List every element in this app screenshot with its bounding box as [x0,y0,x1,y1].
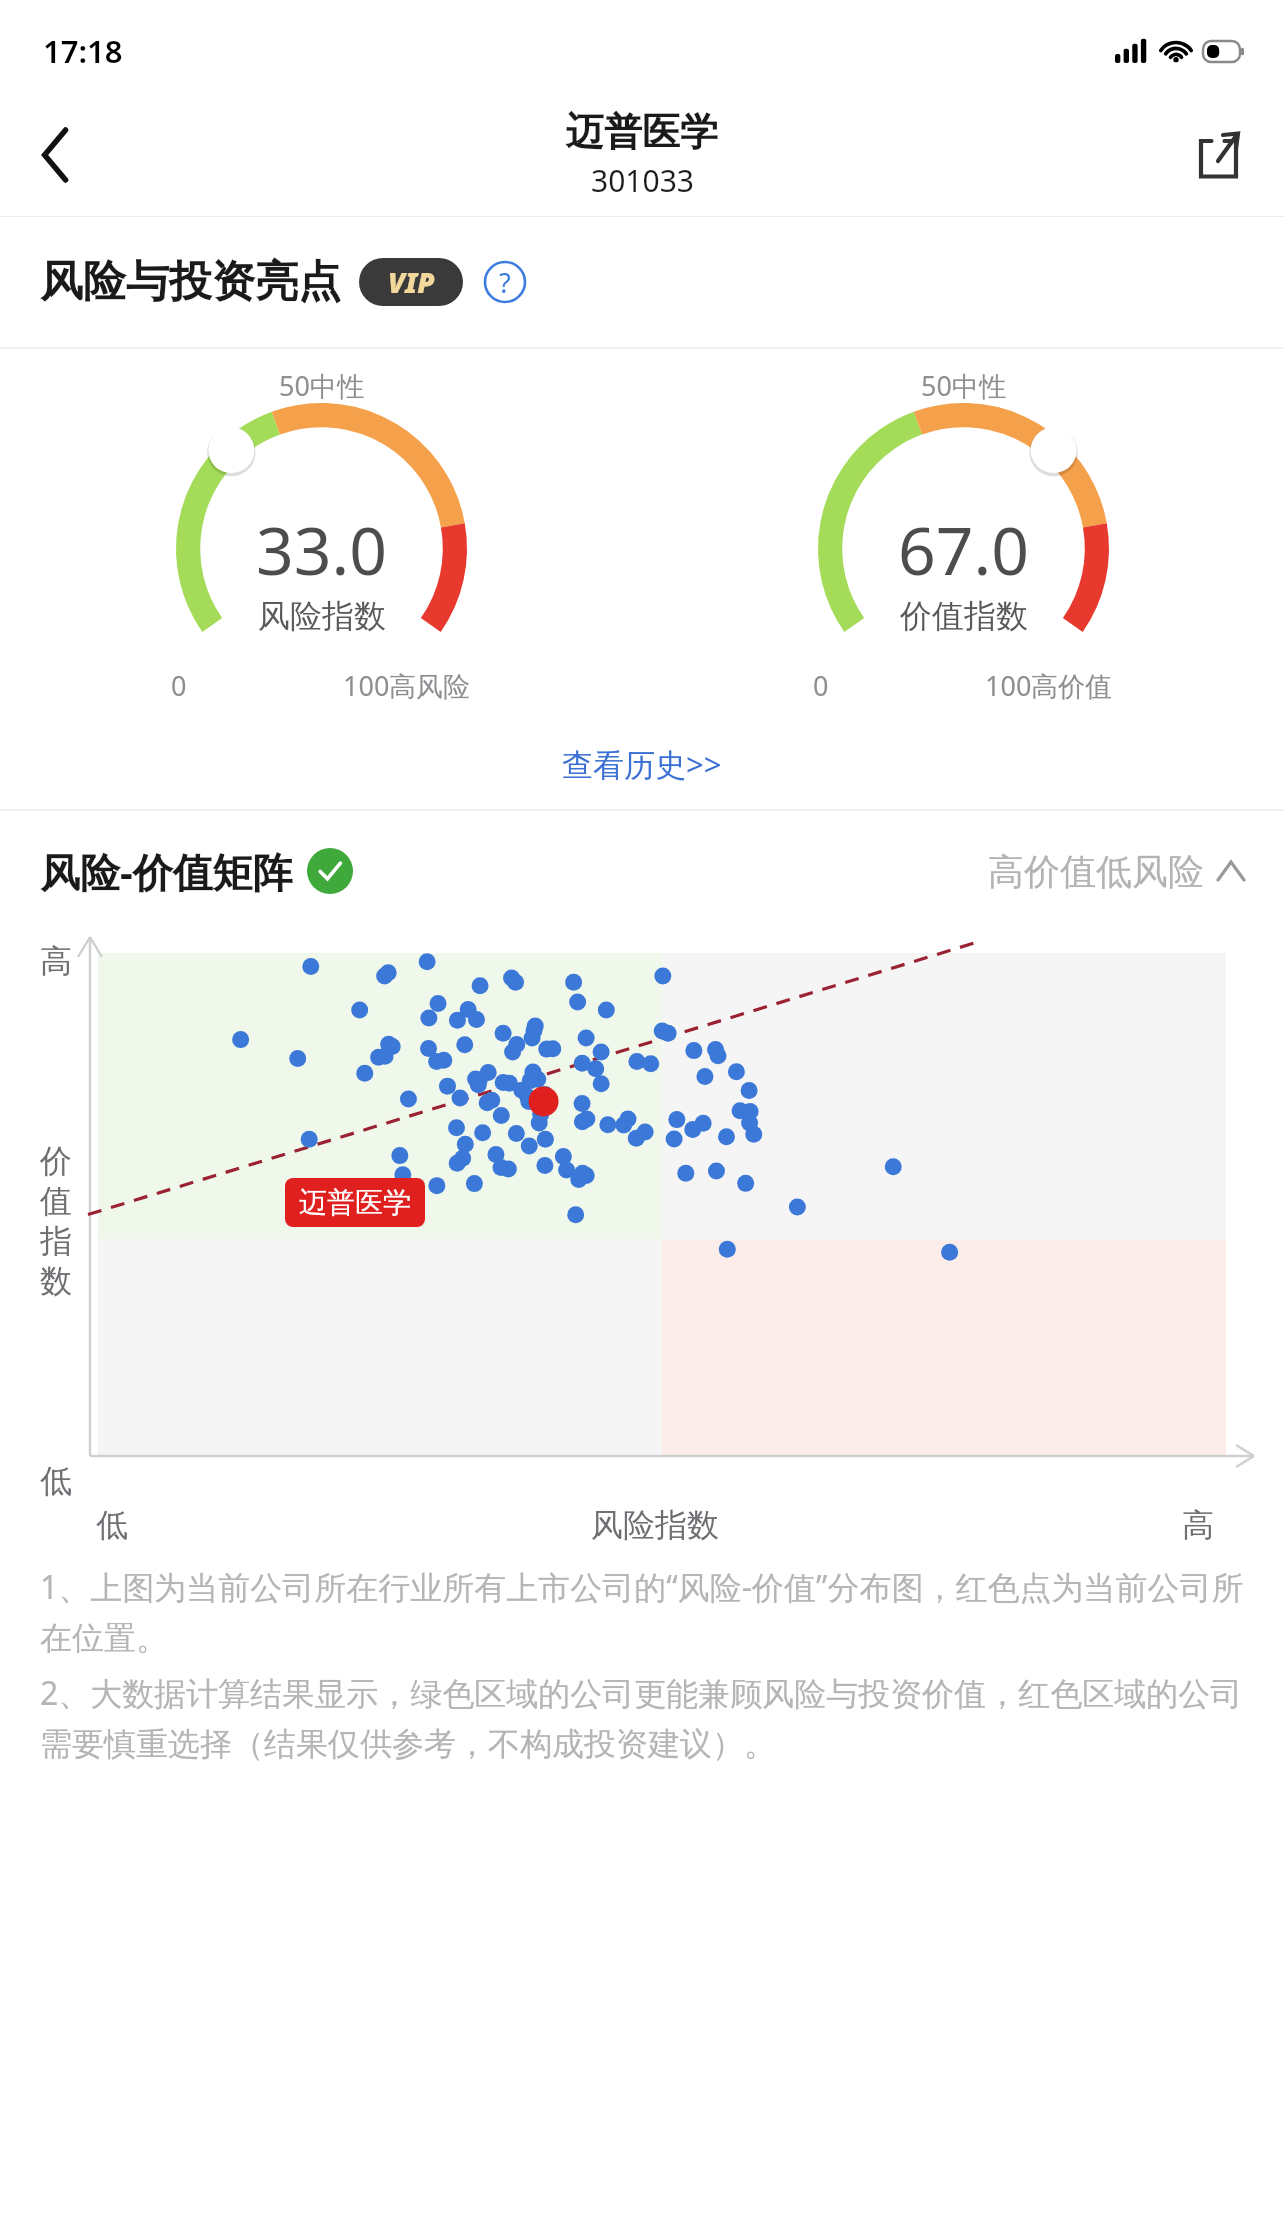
button[interactable]: Back [18,117,94,193]
staticText: 50中性 [921,367,1006,404]
staticText: 价 [40,1141,72,1181]
staticText: 风险-价值矩阵 [40,844,293,899]
staticText: 查看历史>> [562,743,722,785]
staticText: 100高价值 [985,667,1113,704]
staticText: 迈普医学 [566,108,718,156]
staticText: 风险与投资亮点 [40,255,341,309]
staticText: 2、大数据计算结果显示，绿色区域的公司更能兼顾风险与投资价值，红色区域的公司需要… [40,1671,1248,1765]
button[interactable]: Help [479,256,531,308]
button[interactable]: 查看历史>> [0,719,1284,809]
staticText: 风险指数 [258,596,386,636]
staticText: 低 [96,1505,128,1545]
staticText: 数 [40,1261,72,1301]
staticText: 67.0 [898,504,1029,594]
staticText: ? [499,264,511,301]
staticText: 价值指数 [900,596,1028,636]
button[interactable]: VIP [359,258,463,306]
button[interactable]: 风险-价值矩阵 [40,811,1244,931]
button[interactable]: Share [1180,117,1256,193]
staticText: 100高风险 [343,667,471,704]
staticText: 高价值低风险 [988,849,1204,894]
staticText: 301033 [591,160,694,201]
button[interactable]: 迈普医学 [299,1185,411,1220]
staticText: 17:18 [43,30,123,72]
staticText: 0 [171,667,187,704]
staticText: 高 [1182,1505,1214,1545]
staticText: 指 [40,1221,72,1261]
staticText: VIP [388,263,435,301]
staticText: 迈普医学 [299,1185,411,1220]
staticText: 50中性 [279,367,364,404]
staticText: 值 [40,1181,72,1221]
staticText: 风险指数 [591,1505,719,1545]
staticText: 1、上图为当前公司所在行业所有上市公司的“风险-价值”分布图，红色点为当前公司所… [40,1565,1248,1659]
staticText: 低 [40,1461,72,1501]
staticText: 高 [40,941,72,981]
staticText: 0 [813,667,829,704]
staticText: 33.0 [256,504,387,594]
